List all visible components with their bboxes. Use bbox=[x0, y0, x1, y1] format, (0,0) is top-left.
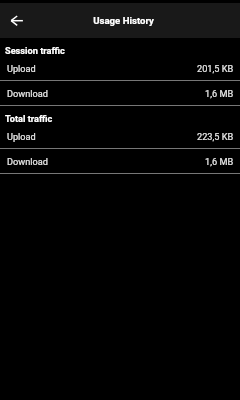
staticText: Session traffic bbox=[5, 45, 65, 56]
staticText: Upload bbox=[7, 131, 36, 142]
staticText: Upload bbox=[7, 63, 36, 74]
button[interactable]: Back bbox=[0, 3, 34, 38]
button[interactable]: Download bbox=[0, 149, 240, 173]
button[interactable]: Upload bbox=[0, 124, 240, 148]
staticText: Total traffic bbox=[5, 113, 53, 124]
staticText: 201,5 KB bbox=[197, 63, 234, 74]
staticText: Usage History bbox=[93, 15, 154, 26]
button[interactable]: Upload bbox=[0, 56, 240, 80]
staticText: 1,6 MB bbox=[205, 156, 234, 167]
button[interactable]: Download bbox=[0, 81, 240, 105]
staticText: Download bbox=[7, 88, 48, 99]
staticText: 223,5 KB bbox=[197, 131, 234, 142]
staticText: 1,6 MB bbox=[205, 88, 234, 99]
staticText: Download bbox=[7, 156, 48, 167]
